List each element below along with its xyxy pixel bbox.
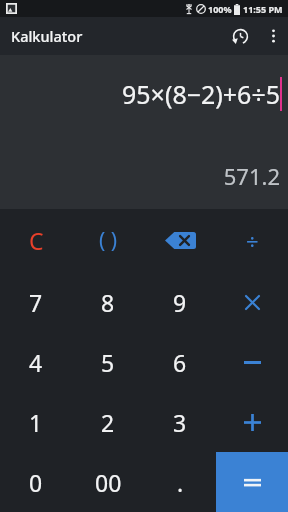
staticText: 6: [173, 347, 187, 378]
staticText: 100%: [208, 3, 232, 15]
staticText: 5: [101, 347, 115, 378]
staticText: 571.2: [223, 161, 280, 191]
button[interactable]: 2: [72, 392, 144, 452]
button[interactable]: ÷: [216, 209, 288, 272]
staticText: Kalkulator: [11, 26, 83, 46]
button[interactable]: 0: [0, 452, 72, 512]
staticText: C: [29, 225, 44, 256]
staticText: 11:55 PM: [243, 3, 283, 15]
button[interactable]: 9: [144, 272, 216, 332]
button[interactable]: History: [222, 18, 258, 54]
button[interactable]: 6: [144, 332, 216, 392]
staticText: 9: [173, 287, 187, 318]
staticText: ÷: [246, 226, 259, 256]
staticText: 95×(8−2)+6÷5: [121, 77, 280, 111]
staticText: 2: [101, 407, 115, 438]
staticText: ( ): [99, 226, 118, 255]
button[interactable]: Backspace: [144, 209, 216, 272]
button[interactable]: Multiply: [216, 272, 288, 332]
button[interactable]: 7: [0, 272, 72, 332]
button[interactable]: 3: [144, 392, 216, 452]
staticText: 3: [173, 407, 187, 438]
button[interactable]: 00: [72, 452, 144, 512]
button[interactable]: More options: [258, 21, 288, 51]
button[interactable]: ( ): [72, 209, 144, 272]
button[interactable]: .: [144, 452, 216, 512]
button[interactable]: 1: [0, 392, 72, 452]
staticText: 00: [95, 467, 122, 498]
button[interactable]: 8: [72, 272, 144, 332]
staticText: 7: [29, 287, 43, 318]
button[interactable]: C: [0, 209, 72, 272]
button[interactable]: Minus: [216, 332, 288, 392]
staticText: 4: [29, 347, 43, 378]
button[interactable]: 4: [0, 332, 72, 392]
button[interactable]: Plus: [216, 392, 288, 452]
button[interactable]: 5: [72, 332, 144, 392]
staticText: 0: [29, 467, 43, 498]
staticText: 1: [29, 407, 43, 438]
button[interactable]: Equals: [216, 452, 288, 512]
staticText: 8: [101, 287, 115, 318]
staticText: .: [177, 467, 184, 498]
